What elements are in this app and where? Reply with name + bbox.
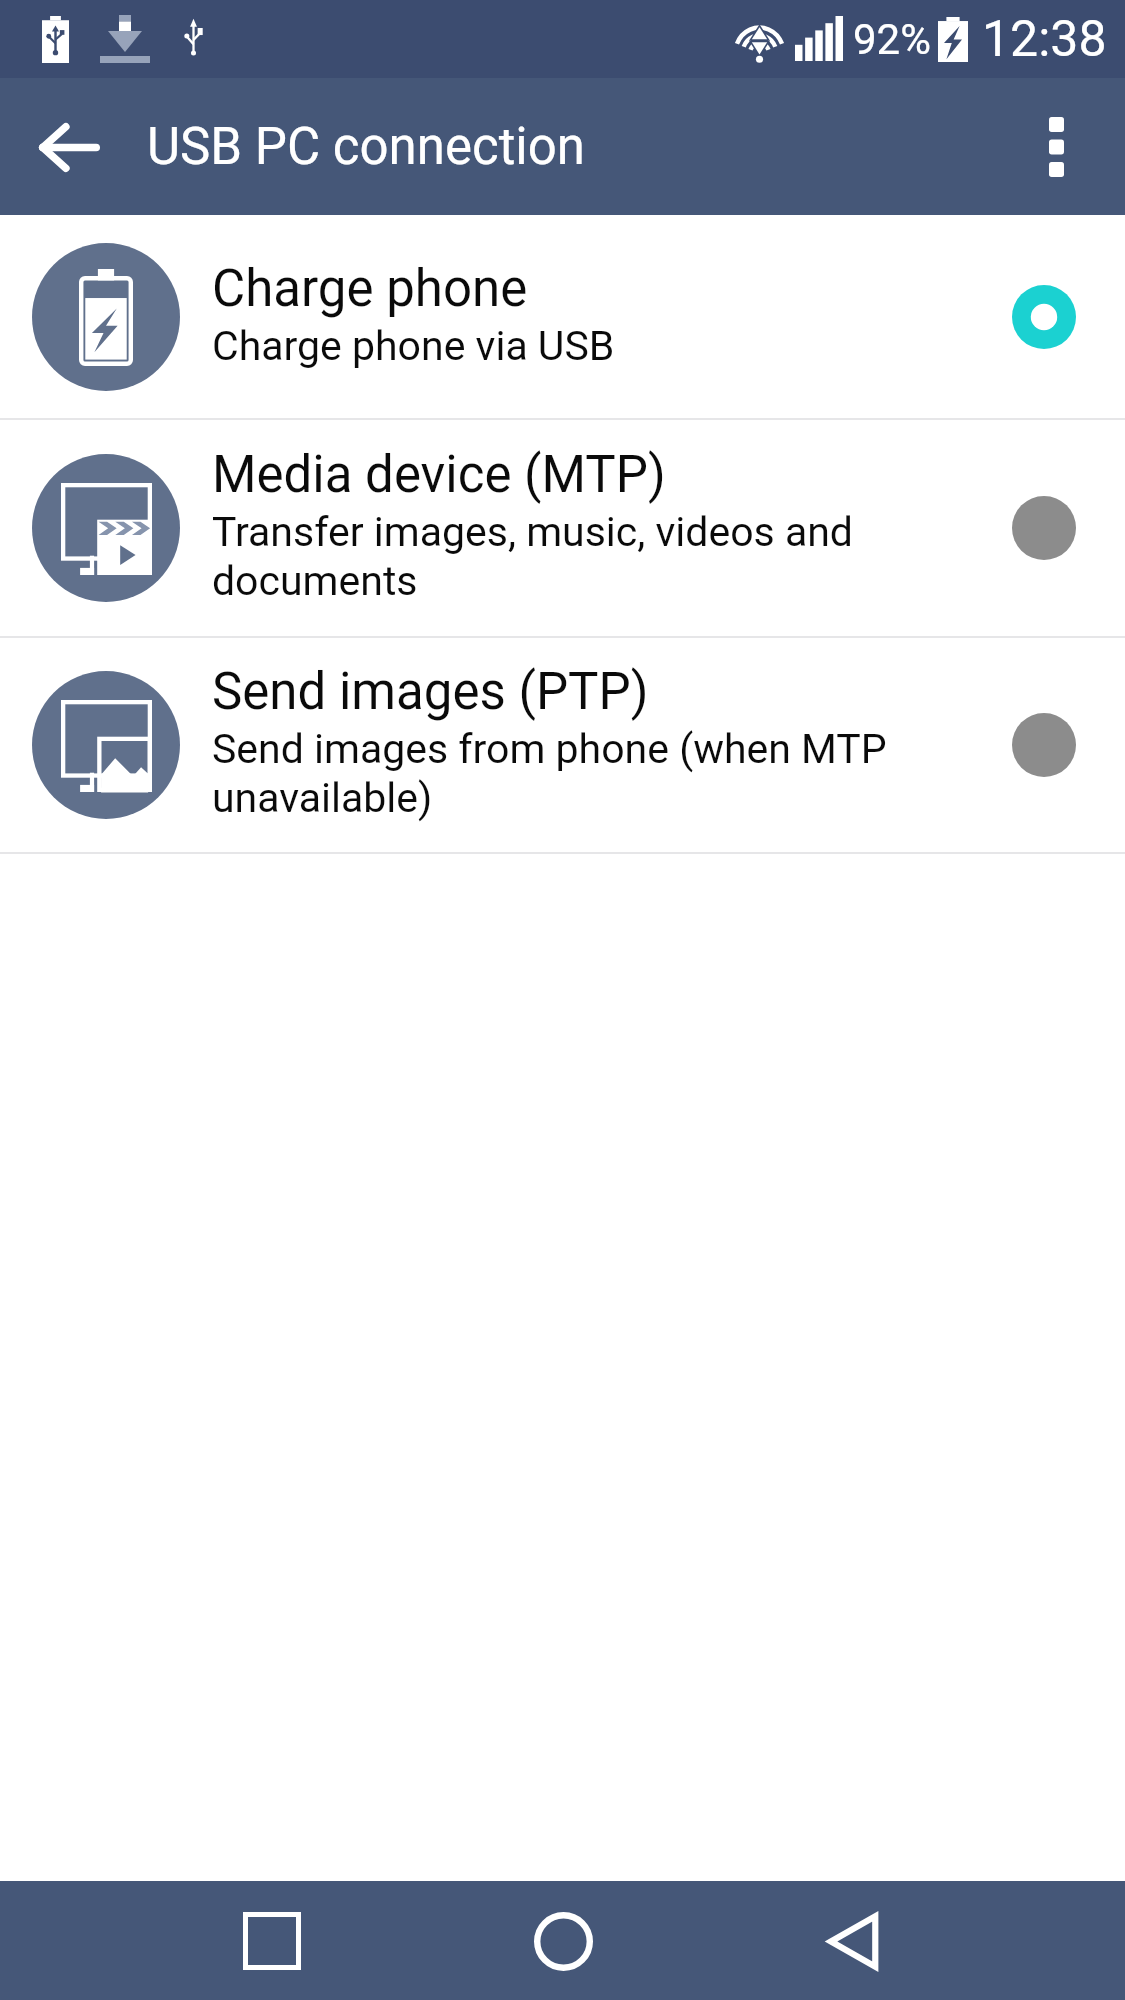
staticText: Transfer images, music, videos and docum… — [212, 508, 945, 605]
button[interactable]: Home — [508, 1886, 618, 1996]
button[interactable]: Send images (PTP) — [0, 638, 1125, 852]
button[interactable]: Media device (MTP) — [0, 420, 1125, 636]
staticText: Send images from phone (when MTP unavail… — [212, 725, 945, 822]
button[interactable]: Navigate up — [14, 92, 124, 202]
button[interactable]: Charge phone — [0, 215, 1125, 418]
staticText: 92% — [853, 15, 931, 64]
button[interactable]: Recent apps — [217, 1886, 327, 1996]
staticText: Media device (MTP) — [212, 445, 666, 505]
button[interactable]: Not selected — [992, 693, 1096, 797]
staticText: Charge phone — [212, 259, 528, 319]
staticText: 12:38 — [982, 10, 1107, 69]
button[interactable]: Not selected — [992, 476, 1096, 580]
button[interactable]: Selected — [992, 265, 1096, 369]
staticText: Send images (PTP) — [212, 662, 649, 722]
staticText: Charge phone via USB — [212, 322, 615, 370]
button[interactable]: More options — [1001, 92, 1111, 202]
staticText: USB PC connection — [147, 117, 585, 177]
button[interactable]: Back — [797, 1886, 907, 1996]
